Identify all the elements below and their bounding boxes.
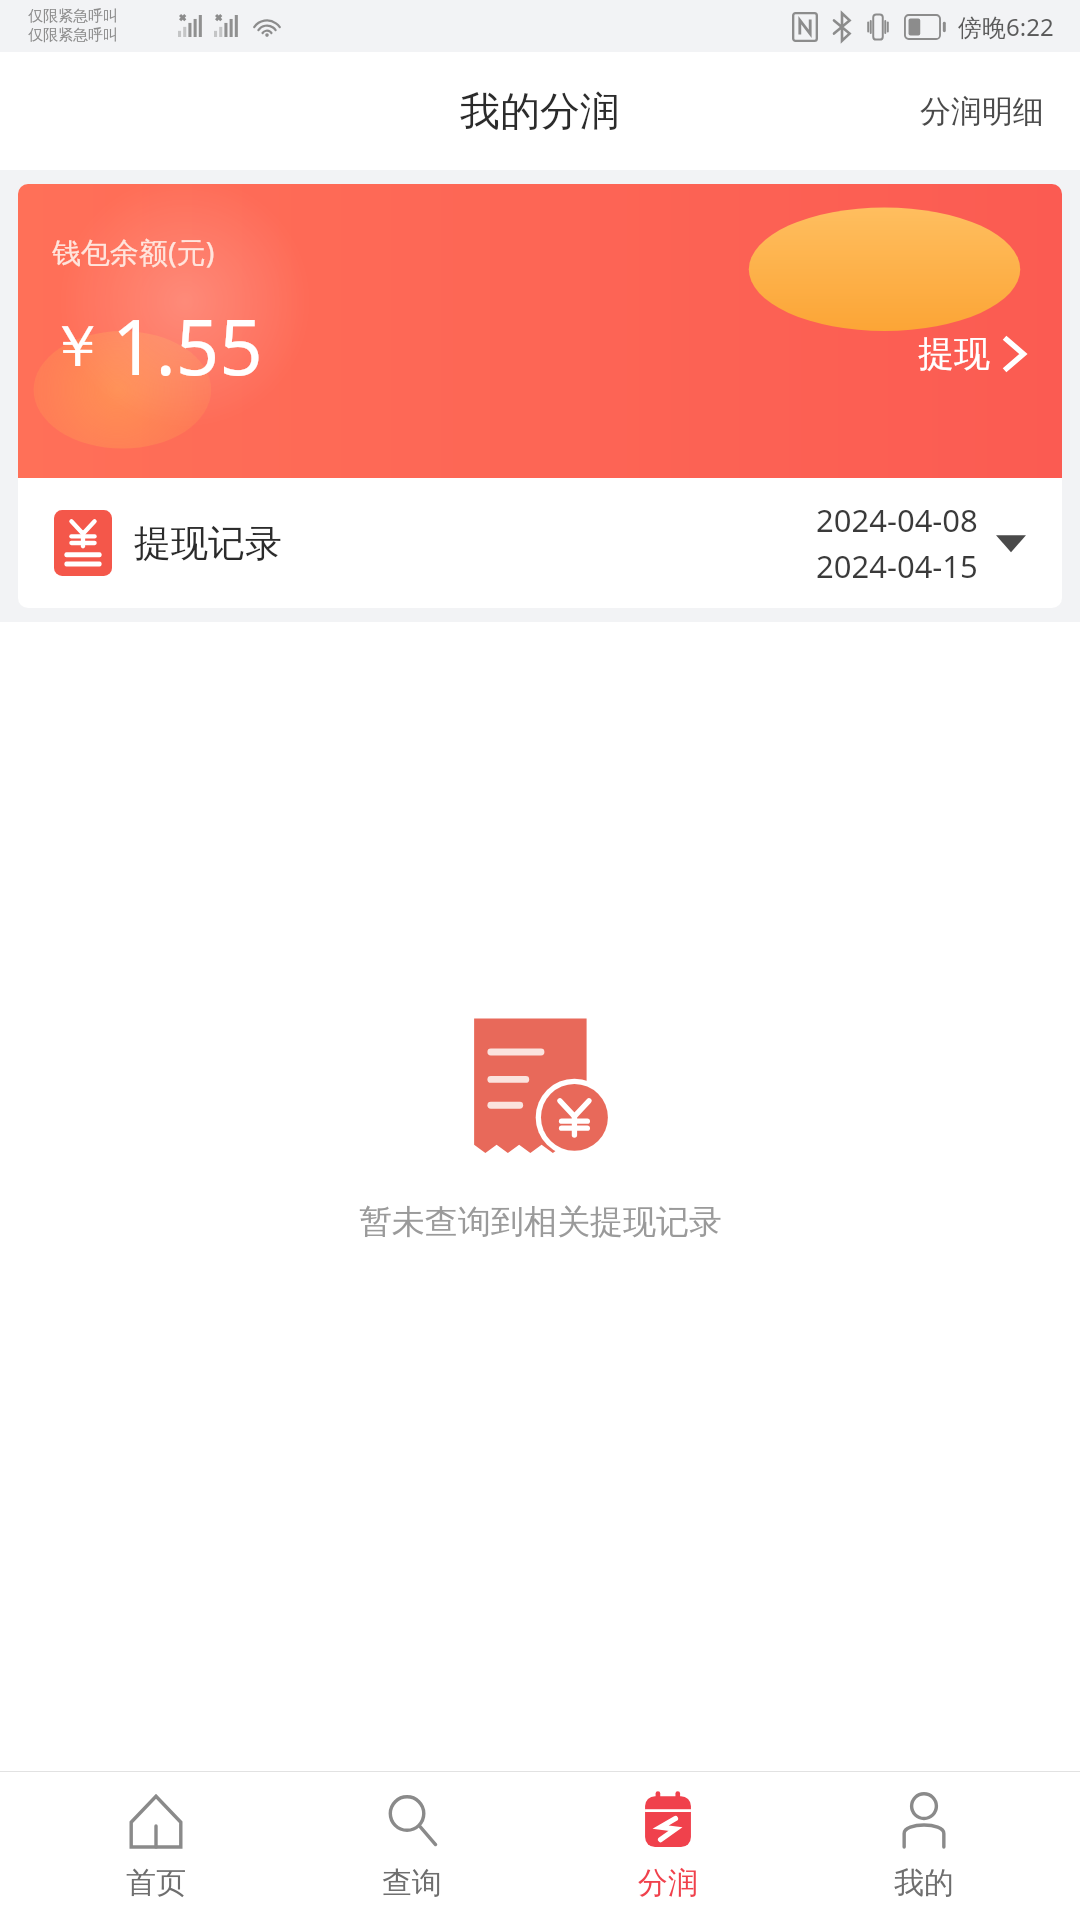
staticText: 我的 <box>894 1864 954 1902</box>
staticText: 提现记录 <box>134 520 282 567</box>
staticText: 2024-04-15 <box>816 545 978 587</box>
button[interactable]: 分润 <box>568 1772 768 1920</box>
other: 首页 <box>125 1790 187 1852</box>
staticText: 提现 <box>918 331 990 376</box>
staticText: 分润 <box>638 1864 698 1902</box>
button[interactable]: 分润明细 <box>884 74 1080 149</box>
staticText: 2024-04-08 <box>816 499 978 541</box>
button[interactable]: 我的 <box>824 1772 1024 1920</box>
button[interactable]: 提现 <box>908 319 1036 388</box>
staticText: 傍晚6:22 <box>958 10 1054 43</box>
other: 分润 <box>637 1790 699 1852</box>
staticText: 1.55 <box>112 294 263 398</box>
button[interactable]: 提现记录 <box>18 478 1062 608</box>
other: 查询 <box>381 1790 443 1852</box>
other: 我的 <box>893 1790 955 1852</box>
button[interactable]: 首页 <box>56 1772 256 1920</box>
staticText: 我的分润 <box>460 86 620 136</box>
staticText: 仅限紧急呼叫 <box>28 26 118 45</box>
staticText: 查询 <box>382 1864 442 1902</box>
button[interactable]: 查询 <box>312 1772 512 1920</box>
staticText: 暂未查询到相关提现记录 <box>359 1201 722 1243</box>
staticText: ￥ <box>48 310 106 383</box>
staticText: 首页 <box>126 1864 186 1902</box>
staticText: 钱包余额(元) <box>52 232 215 272</box>
staticText: 仅限紧急呼叫 <box>28 7 118 26</box>
staticText: 分润明细 <box>920 92 1044 131</box>
